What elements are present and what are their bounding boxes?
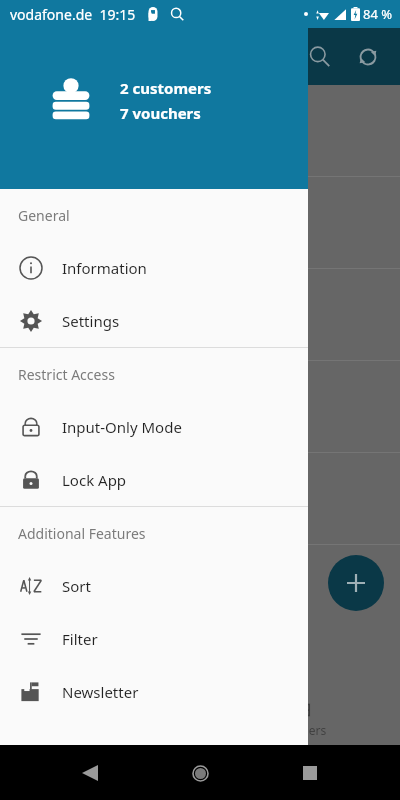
staticText: Restrict Access <box>18 365 115 384</box>
staticText: Additional Features <box>18 524 146 543</box>
staticText: vodafone.de 19:15 <box>10 5 136 24</box>
staticText: 2 customers <box>120 78 212 98</box>
staticText: Filter <box>62 629 98 649</box>
staticText: Settings <box>62 311 120 331</box>
button[interactable]: Newsletter <box>0 665 308 718</box>
button[interactable]: Refresh <box>344 33 392 81</box>
staticText: Sort <box>62 576 91 596</box>
staticText: Input-Only Mode <box>62 417 182 437</box>
button[interactable]: Vouchers <box>200 689 400 745</box>
button[interactable]: Settings <box>0 294 308 347</box>
button[interactable]: Add <box>328 555 384 611</box>
staticText: General <box>18 206 70 225</box>
button[interactable]: Sort <box>0 559 308 612</box>
button[interactable]: Recents <box>290 753 330 793</box>
staticText: 84 % <box>363 5 393 23</box>
button[interactable]: Home <box>180 753 220 793</box>
button[interactable]: Lock App <box>0 453 308 506</box>
staticText: Lock App <box>62 470 127 490</box>
staticText: Information <box>62 258 147 278</box>
button[interactable]: Search <box>296 33 344 81</box>
button[interactable]: Customers <box>0 689 200 745</box>
button[interactable]: Input-Only Mode <box>0 400 308 453</box>
button[interactable]: Information <box>0 241 308 294</box>
staticText: Newsletter <box>62 682 139 702</box>
button[interactable]: Filter <box>0 612 308 665</box>
button[interactable]: Back <box>70 753 110 793</box>
staticText: Vouchers <box>274 722 327 738</box>
staticText: 7 vouchers <box>120 103 201 123</box>
